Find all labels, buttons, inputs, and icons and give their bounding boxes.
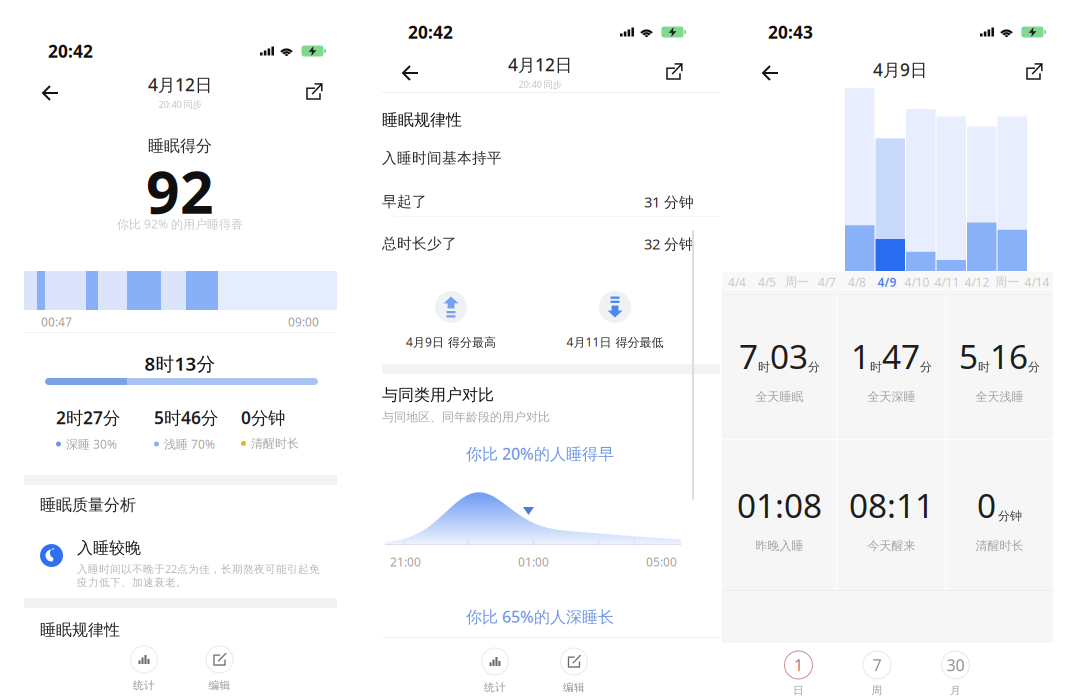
staticText: 20:43 [768, 20, 813, 43]
staticText: 4/4 [728, 274, 746, 290]
staticText: 时 [758, 359, 770, 374]
staticText: 4月9日 [873, 58, 927, 81]
staticText: 7 [739, 334, 758, 378]
staticText: 日 [793, 684, 804, 696]
staticText: 4/8 [848, 274, 866, 290]
staticText: 与同地区、同年龄段的用户对比 [382, 410, 550, 424]
staticText: 09:00 [288, 314, 319, 330]
staticText: 05:00 [646, 554, 677, 570]
staticText: 总时长少了 [382, 235, 457, 253]
staticText: 5 [959, 334, 978, 378]
staticText: 编辑 [563, 681, 585, 694]
staticText: 统计 [133, 679, 155, 692]
staticText: 与同类用户对比 [382, 385, 494, 405]
staticText: 分钟 [998, 508, 1022, 523]
staticText: 统计 [484, 681, 506, 694]
staticText: 周一 [785, 275, 809, 289]
staticText: 20:40 同步 [158, 98, 201, 110]
button[interactable]: Back [390, 52, 431, 94]
staticText: 01:00 [518, 554, 549, 570]
staticText: 分 [808, 359, 820, 374]
staticText: 92 [146, 152, 214, 230]
staticText: 1 [794, 654, 803, 676]
button[interactable]: Back [30, 72, 71, 114]
staticText: 7 [872, 654, 881, 676]
staticText: 你比 92% 的用户睡得香 [117, 216, 243, 232]
button[interactable]: 统计 [473, 648, 517, 694]
staticText: 31 分钟 [644, 192, 694, 211]
staticText: 睡眠规律性 [40, 620, 120, 640]
button[interactable]: 30 [941, 651, 970, 696]
staticText: 睡眠质量分析 [40, 495, 136, 515]
staticText: 20:42 [48, 39, 93, 62]
staticText: 08:11 [849, 483, 934, 527]
staticText: 全天深睡 [867, 389, 915, 404]
staticText: 01:08 [737, 483, 822, 527]
staticText: 16 [990, 334, 1028, 378]
button[interactable]: Share [654, 52, 693, 93]
staticText: 周一 [995, 275, 1019, 289]
staticText: 全天睡眠 [755, 389, 803, 404]
button[interactable]: Back [750, 52, 791, 94]
staticText: 47 [882, 334, 920, 378]
staticText: 4/11 [934, 274, 959, 290]
staticText: 清醒时长 [975, 538, 1023, 553]
button[interactable]: Share [1014, 52, 1053, 93]
staticText: 4/7 [818, 274, 836, 290]
staticText: 8时13分 [144, 351, 215, 376]
button[interactable]: 1 [784, 651, 813, 696]
staticText: 4/5 [758, 274, 776, 290]
staticText: 32 分钟 [644, 234, 694, 253]
staticText: 0分钟 [241, 406, 285, 429]
staticText: 4/10 [904, 274, 929, 290]
staticText: 0 [977, 483, 996, 527]
staticText: 5时46分 [154, 406, 218, 429]
staticText: 时 [870, 359, 882, 374]
staticText: 4/9 [877, 274, 896, 290]
button[interactable]: 统计 [122, 646, 166, 692]
staticText: 20:42 [408, 20, 453, 43]
button[interactable]: 编辑 [197, 646, 241, 692]
staticText: 03 [770, 334, 808, 378]
staticText: 入睡较晚 [77, 538, 141, 558]
staticText: 睡眠得分 [148, 136, 212, 156]
staticText: 4月12日 [508, 53, 572, 76]
staticText: 20:40 同步 [518, 78, 561, 90]
button[interactable]: 7 [862, 651, 891, 696]
staticText: 30 [946, 654, 964, 676]
staticText: 4月11日 得分最低 [566, 334, 663, 350]
staticText: 全天浅睡 [975, 389, 1023, 404]
staticText: 4/12 [964, 274, 989, 290]
staticText: 清醒时长 [251, 436, 299, 451]
staticText: 1 [851, 334, 870, 378]
staticText: 21:00 [390, 554, 421, 570]
staticText: 4月9日 得分最高 [406, 334, 496, 350]
staticText: 早起了 [382, 193, 427, 211]
staticText: 00:47 [41, 314, 72, 330]
staticText: 周 [871, 684, 882, 696]
staticText: 你比 20%的人睡得早 [466, 443, 614, 464]
staticText: 分 [1028, 359, 1040, 374]
staticText: 入睡时间基本持平 [382, 149, 502, 167]
staticText: 月 [950, 684, 961, 696]
staticText: 时 [978, 359, 990, 374]
staticText: 今天醒来 [867, 538, 915, 553]
staticText: 昨晚入睡 [755, 538, 803, 553]
staticText: 深睡 30% [66, 436, 117, 452]
staticText: 4月12日 [148, 73, 212, 96]
staticText: 睡眠规律性 [382, 110, 462, 130]
staticText: 分 [920, 359, 932, 374]
staticText: 2时27分 [56, 406, 120, 429]
button[interactable]: 编辑 [552, 648, 596, 694]
button[interactable]: Share [294, 72, 333, 113]
staticText: 4/14 [1024, 274, 1049, 290]
staticText: 编辑 [208, 679, 230, 692]
staticText: 入睡时间以不晚于22点为佳，长期熬夜可能引起免疫力低下、加速衰老。 [77, 562, 320, 589]
staticText: 浅睡 70% [164, 436, 215, 452]
staticText: 你比 65%的人深睡长 [466, 606, 614, 627]
